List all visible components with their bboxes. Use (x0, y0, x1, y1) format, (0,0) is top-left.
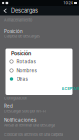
staticText: Red (4, 103, 13, 109)
staticText: Almacenamiento (4, 18, 32, 22)
button[interactable]: Back (1, 6, 10, 15)
button[interactable]: ACEPTAR (60, 85, 79, 92)
staticText: ACEPTAR (61, 86, 78, 91)
button[interactable]: Otras (9, 76, 72, 82)
staticText: Otras (16, 76, 27, 82)
staticText: Posición (4, 28, 23, 34)
staticText: Colocar los archivos en una carpeta (4, 132, 63, 137)
staticText: Carpeta de descargas (4, 34, 40, 38)
staticText: Notificaciones (4, 117, 36, 123)
button[interactable]: Nombres (9, 67, 72, 73)
staticText: Configuración (4, 96, 27, 100)
staticText: Descargas (11, 7, 38, 14)
staticText: Nombres (16, 68, 36, 73)
button[interactable]: Rotadas (9, 58, 72, 64)
staticText: Avisar al terminar una descarga (4, 123, 55, 127)
staticText: Descargar solo por Wi-Fi (4, 109, 46, 113)
staticText: Posición (11, 50, 31, 56)
staticText: Rotadas (16, 59, 35, 64)
staticText: 10:24 (64, 1, 73, 5)
